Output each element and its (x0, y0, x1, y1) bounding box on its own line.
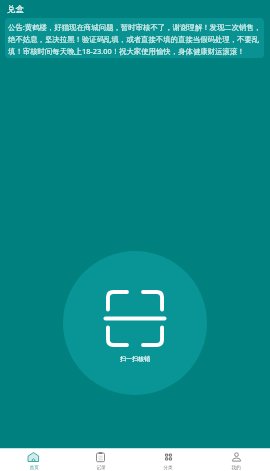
staticText: 扫一扫核销 (120, 355, 150, 363)
button[interactable]: 我的 (202, 449, 270, 471)
button[interactable]: 扫一扫核销 (63, 251, 207, 395)
button[interactable]: 分类 (134, 449, 202, 471)
staticText: 我的 (231, 465, 241, 471)
staticText: 兑盒 (7, 4, 24, 15)
staticText: 记录 (96, 465, 106, 471)
staticText: 分类 (163, 465, 173, 471)
button[interactable]: 记录 (67, 449, 134, 471)
staticText: 首页 (29, 465, 39, 471)
button[interactable]: 首页 (0, 449, 67, 471)
button[interactable]: 公告:黄鹤楼，好猫现在商城问题，暂时审核不了，谢谢理解！发现二次销售，绝不姑息，… (5, 18, 264, 58)
staticText: 公告:黄鹤楼，好猫现在商城问题，暂时审核不了，谢谢理解！发现二次销售，绝不姑息，… (8, 22, 262, 56)
